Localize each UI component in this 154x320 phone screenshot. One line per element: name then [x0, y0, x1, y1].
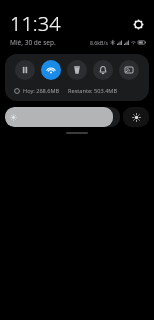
- staticText: 8.6kB/s: [90, 39, 108, 46]
- staticText: 11:34: [10, 10, 61, 37]
- button[interactable]: Auto brightness: [123, 107, 149, 127]
- button[interactable]: Brightness: [5, 107, 120, 127]
- button[interactable]: Settings: [130, 16, 146, 32]
- button[interactable]: Wi-Fi: [41, 60, 61, 80]
- staticText: Mié, 30 de sep.: [10, 38, 56, 47]
- button[interactable]: Hoy: 268.6MB: [14, 87, 149, 95]
- staticText: Hoy: 268.6MB: [23, 87, 60, 95]
- button[interactable]: Expand: [66, 132, 88, 134]
- button[interactable]: Ring mode: [93, 60, 113, 80]
- staticText: Restante: 503.4MB: [68, 87, 118, 95]
- button[interactable]: Flashlight: [67, 60, 87, 80]
- button[interactable]: Mobile data: [15, 60, 35, 80]
- button[interactable]: Cast screen: [119, 60, 139, 80]
